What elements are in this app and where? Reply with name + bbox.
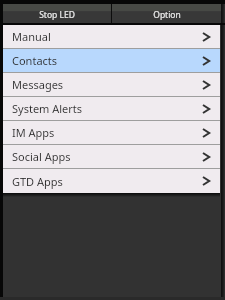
staticText: Option	[153, 9, 181, 21]
other: Open Social Apps	[203, 152, 211, 162]
button[interactable]: Contacts	[3, 49, 220, 72]
button[interactable]: Option	[112, 4, 221, 23]
other: Open Messages	[203, 80, 211, 90]
other: Open Contacts	[203, 56, 211, 66]
staticText: Contacts	[12, 53, 203, 68]
staticText: Messages	[12, 77, 203, 92]
button[interactable]: Manual	[3, 25, 220, 48]
other: Open System Alerts	[203, 104, 211, 114]
button[interactable]: Social Apps	[3, 145, 220, 168]
staticText: GTD Apps	[12, 174, 203, 189]
button[interactable]: GTD Apps	[3, 169, 220, 193]
staticText: IM Apps	[12, 125, 203, 140]
other: Open GTD Apps	[203, 176, 211, 186]
staticText: Social Apps	[12, 149, 203, 164]
staticText: Stop LED	[39, 9, 75, 21]
other: Open IM Apps	[203, 128, 211, 138]
button[interactable]: IM Apps	[3, 121, 220, 144]
staticText: Manual	[12, 29, 203, 44]
other: Open Manual	[203, 32, 211, 42]
button[interactable]: Messages	[3, 73, 220, 96]
staticText: System Alerts	[12, 101, 203, 116]
button[interactable]: Stop LED	[3, 4, 111, 23]
button[interactable]: System Alerts	[3, 97, 220, 120]
